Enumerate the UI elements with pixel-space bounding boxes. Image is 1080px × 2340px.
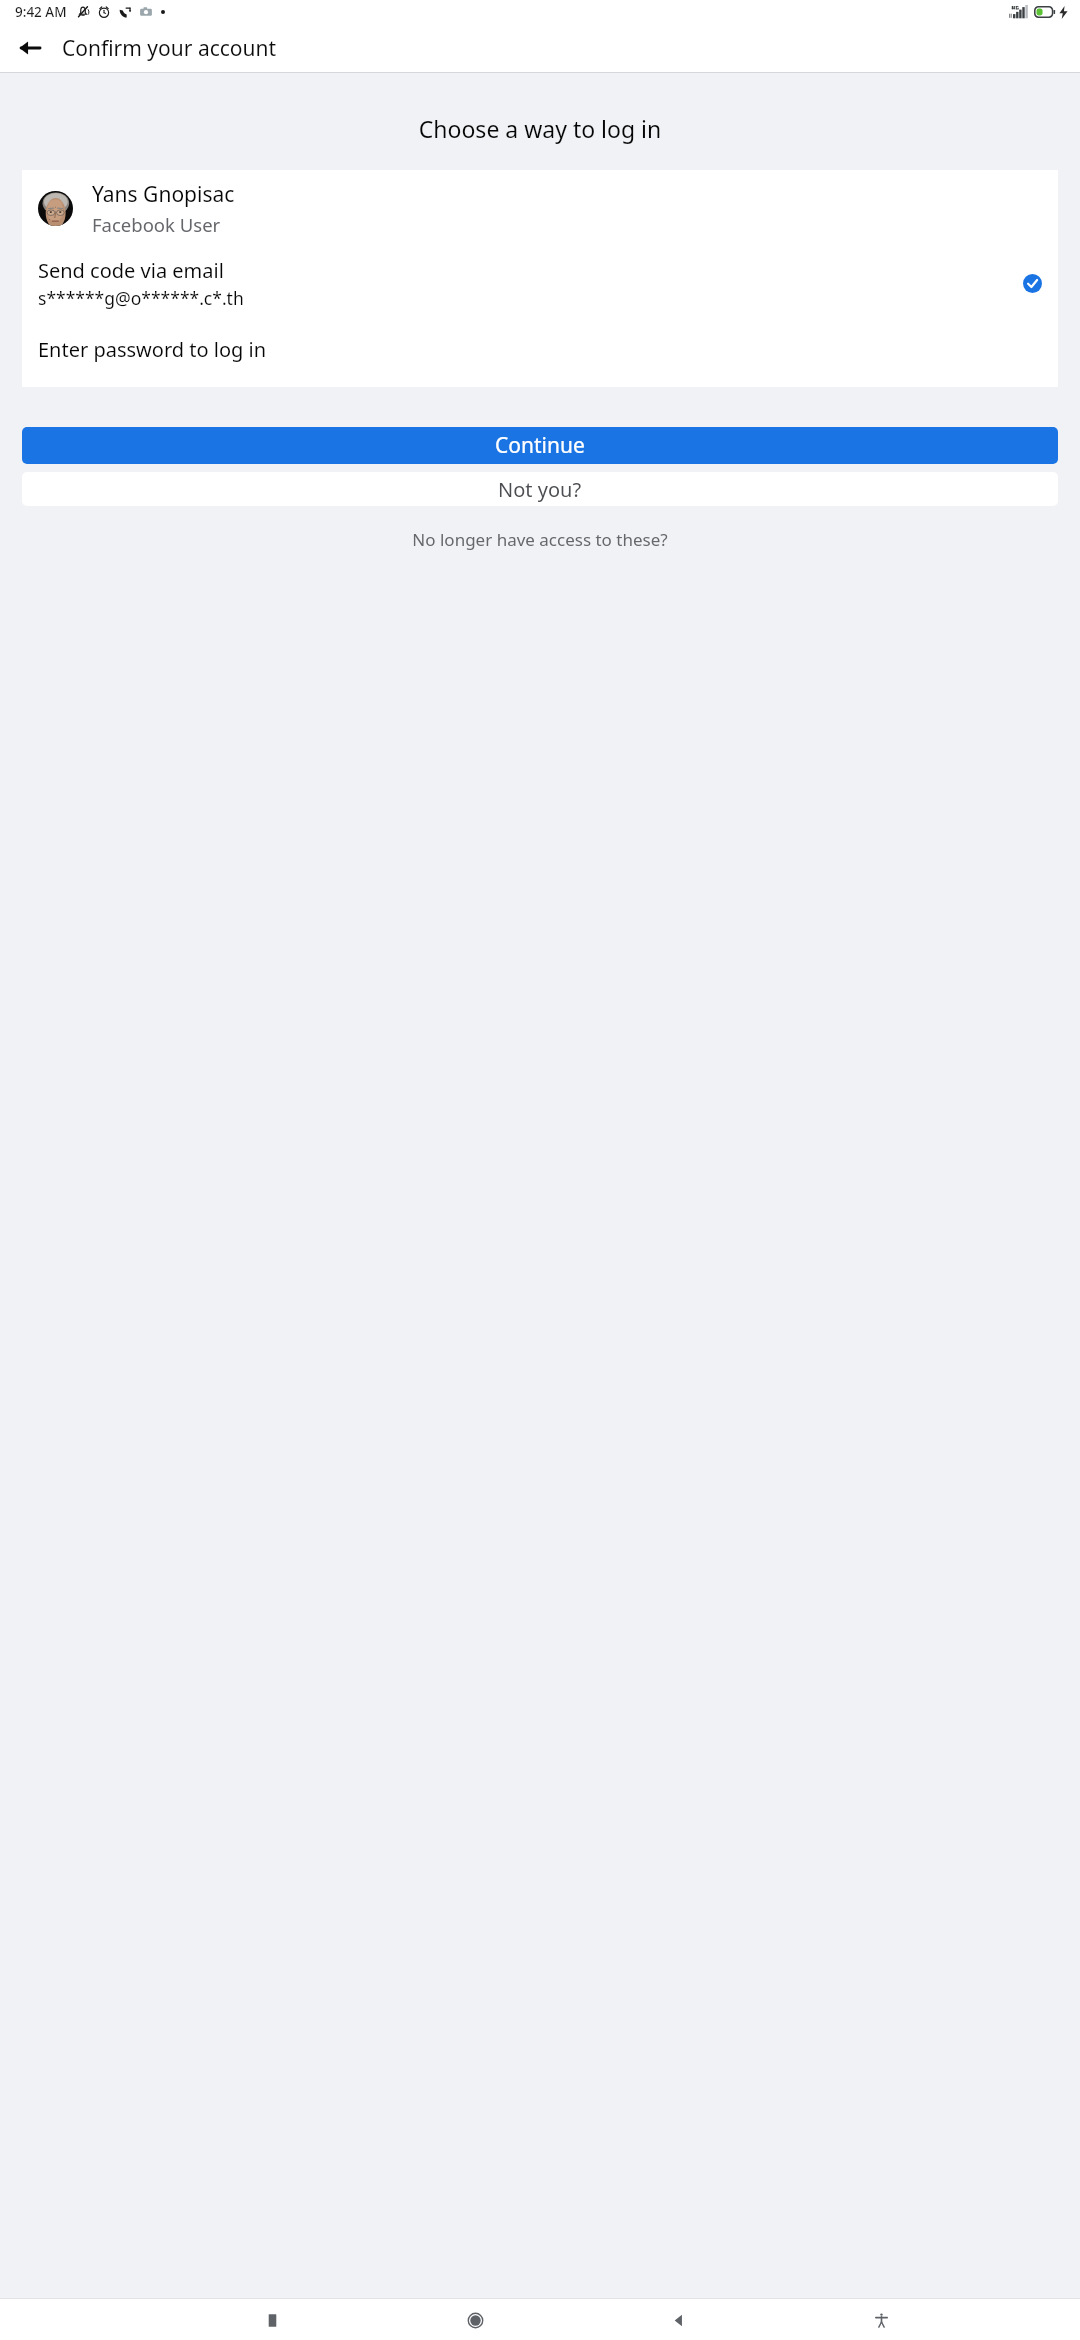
button[interactable]: Recents — [252, 2300, 292, 2340]
staticText: Enter password to log in — [38, 336, 267, 363]
button[interactable]: Continue — [22, 427, 1058, 464]
button[interactable]: Accessibility — [861, 2300, 901, 2340]
staticText: Continue — [495, 431, 585, 460]
staticText: Facebook User — [92, 212, 221, 237]
staticText: Confirm your account — [62, 34, 277, 63]
button[interactable]: Not you? — [22, 472, 1058, 506]
staticText: s******g@o******.c*.th — [38, 286, 244, 310]
button[interactable]: No longer have access to these? — [0, 522, 1080, 557]
staticText: 9:42 AM — [15, 3, 67, 21]
staticText: Not you? — [498, 476, 582, 503]
button[interactable]: Send code via email — [22, 243, 1058, 324]
button[interactable]: Back — [8, 26, 52, 70]
button[interactable]: Home — [455, 2300, 495, 2340]
button[interactable]: Enter password to log in — [22, 324, 1058, 387]
button[interactable]: Back — [658, 2300, 698, 2340]
staticText: Send code via email — [38, 257, 224, 284]
button[interactable]: Yans Gnopisac — [22, 170, 1058, 243]
staticText: Choose a way to log in — [0, 113, 1080, 144]
staticText: Yans Gnopisac — [92, 180, 235, 209]
